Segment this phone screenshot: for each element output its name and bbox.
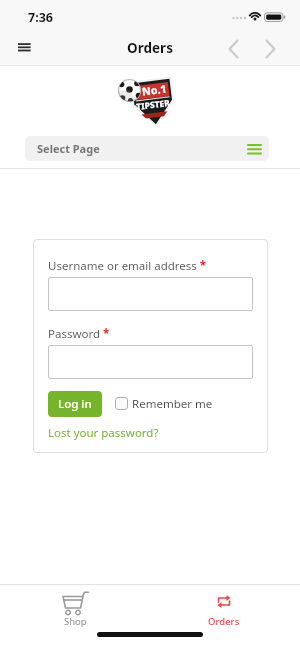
staticText: Remember me <box>132 396 213 412</box>
button[interactable] <box>221 34 247 62</box>
staticText: TIPSTER <box>135 97 171 113</box>
button[interactable]: Lost your password? <box>48 425 159 441</box>
button[interactable]: Select Page <box>25 136 269 161</box>
button[interactable]: Orders <box>194 586 254 628</box>
staticText: Log in <box>58 396 92 412</box>
button[interactable] <box>12 35 37 58</box>
staticText: Orders <box>0 39 300 57</box>
staticText: Password * <box>48 326 110 342</box>
staticText: Orders <box>208 615 240 628</box>
button[interactable] <box>115 397 128 410</box>
staticText: 7:36 <box>28 9 53 26</box>
button[interactable] <box>259 34 285 62</box>
staticText: No.1 <box>141 81 168 98</box>
staticText: Username or email address * <box>48 258 207 274</box>
button[interactable]: Log in <box>48 391 102 417</box>
button[interactable]: Shop <box>45 586 105 628</box>
staticText: Shop <box>64 615 87 628</box>
staticText: Select Page <box>37 141 100 156</box>
